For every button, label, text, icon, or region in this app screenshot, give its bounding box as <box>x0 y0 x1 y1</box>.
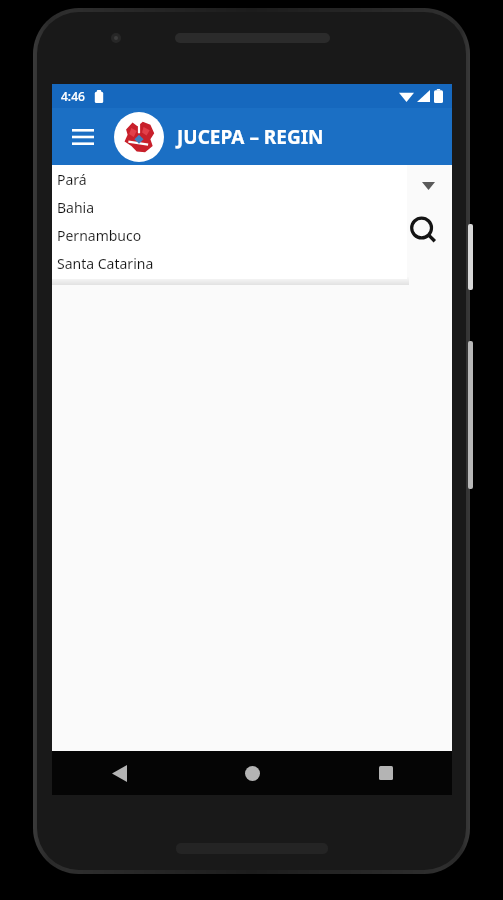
button[interactable]: Select state <box>408 169 448 203</box>
button[interactable]: Bahia <box>52 193 407 221</box>
button[interactable]: Home <box>186 751 319 795</box>
button[interactable]: Recent apps <box>319 751 452 795</box>
button[interactable]: JUCEPA logo <box>114 112 164 162</box>
staticText: Pernambuco <box>57 226 142 245</box>
staticText: 4:46 <box>61 88 85 104</box>
button[interactable]: Pernambuco <box>52 221 407 249</box>
staticText: Santa Catarina <box>57 254 154 273</box>
button[interactable]: Back <box>52 751 186 795</box>
staticText: Pará <box>57 170 87 189</box>
staticText: JUCEPA – REGIN <box>177 124 324 150</box>
button[interactable]: Santa Catarina <box>52 249 407 277</box>
button[interactable]: Open navigation menu <box>64 118 102 156</box>
button[interactable]: Pará <box>52 165 407 193</box>
button[interactable]: Search <box>400 207 448 255</box>
staticText: Bahia <box>57 198 95 217</box>
